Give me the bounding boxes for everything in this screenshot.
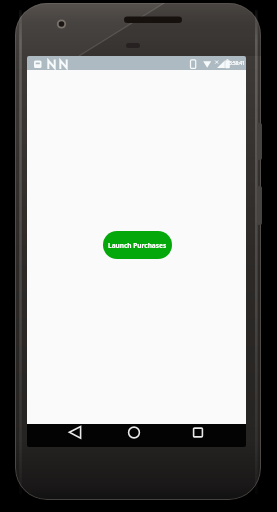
button[interactable]: Launch Purchases [103, 231, 172, 259]
staticText: Launch Purchases [108, 241, 167, 250]
staticText: 3:58:41 [229, 60, 245, 67]
button[interactable] [116, 424, 152, 447]
button[interactable] [180, 424, 216, 447]
button[interactable] [57, 424, 93, 447]
